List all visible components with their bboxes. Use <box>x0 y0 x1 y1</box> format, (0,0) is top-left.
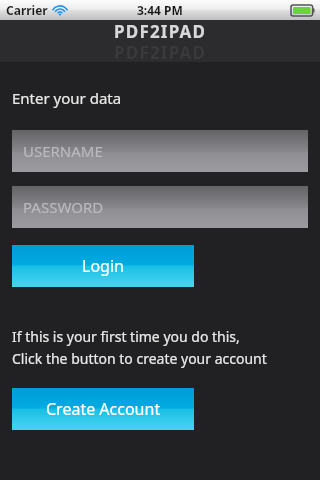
staticText: Create Account <box>46 398 161 420</box>
staticText: Carrier <box>6 2 48 18</box>
button[interactable]: PASSWORD <box>12 186 308 228</box>
button[interactable]: USERNAME <box>12 130 308 172</box>
staticText: USERNAME <box>23 141 103 161</box>
staticText: PDF2IPAD <box>114 20 207 43</box>
staticText: PDF2IPAD <box>114 41 207 60</box>
staticText: If this is your first time you do this, <box>12 327 240 346</box>
staticText: Enter your data <box>12 88 122 108</box>
staticText: PASSWORD <box>23 197 104 217</box>
staticText: 3:44 PM <box>137 2 183 18</box>
button[interactable]: Create Account <box>12 388 194 430</box>
button[interactable]: Login <box>12 245 194 287</box>
staticText: Login <box>82 255 124 277</box>
staticText: Click the button to create your account <box>12 349 267 368</box>
